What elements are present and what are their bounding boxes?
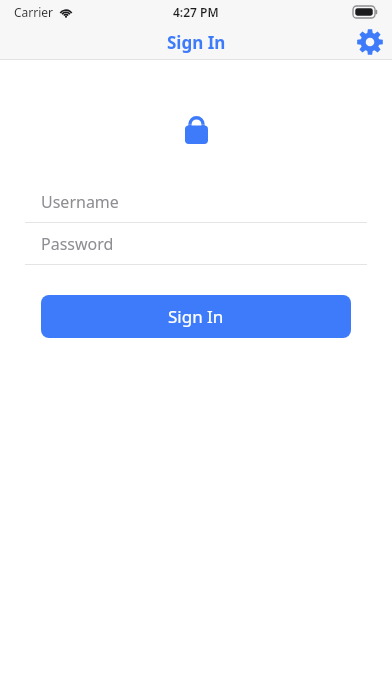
- staticText: Carrier: [14, 4, 54, 20]
- button[interactable]: Sign In: [159, 29, 234, 56]
- button[interactable]: Sign In: [41, 295, 351, 338]
- button[interactable]: Username: [0, 181, 392, 223]
- staticText: 4:27 PM: [173, 4, 219, 20]
- button[interactable]: Settings: [357, 29, 383, 55]
- staticText: Password: [41, 233, 114, 255]
- staticText: Sign In: [168, 305, 224, 328]
- staticText: Username: [41, 191, 119, 213]
- button[interactable]: Password: [0, 223, 392, 265]
- staticText: Sign In: [167, 31, 226, 54]
